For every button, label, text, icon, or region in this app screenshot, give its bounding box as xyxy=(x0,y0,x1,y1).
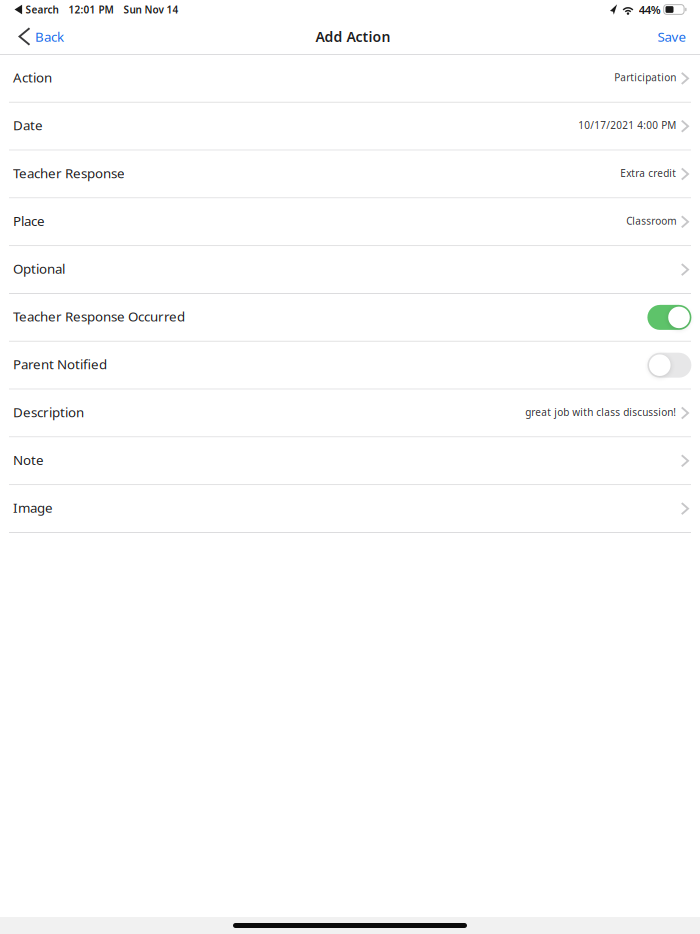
staticText: Optional xyxy=(13,259,65,278)
button[interactable]: Back xyxy=(0,20,74,52)
button[interactable]: Note xyxy=(0,437,700,484)
staticText: Image xyxy=(13,498,53,517)
button[interactable]: Date xyxy=(0,103,700,150)
button[interactable]: Description xyxy=(0,390,700,436)
staticText: Add Action xyxy=(315,27,390,46)
staticText: 44% xyxy=(639,2,661,17)
staticText: Parent Notified xyxy=(13,355,107,373)
button[interactable]: Optional xyxy=(0,246,700,293)
button[interactable]: Action xyxy=(0,55,700,102)
staticText: Note xyxy=(13,451,44,469)
staticText: Back xyxy=(35,27,64,46)
staticText: Extra credit xyxy=(620,166,676,180)
staticText: Description xyxy=(13,403,84,421)
staticText: Teacher Response xyxy=(13,164,125,182)
staticText: Teacher Response Occurred xyxy=(13,307,185,325)
button[interactable]: Teacher Response Occurred xyxy=(0,294,700,341)
staticText: Sun Nov 14 xyxy=(124,3,179,16)
button[interactable]: Parent Notified xyxy=(0,342,700,389)
button[interactable]: Teacher Response xyxy=(0,151,700,197)
staticText: Action xyxy=(13,68,52,86)
staticText: Save xyxy=(657,27,686,46)
staticText: Date xyxy=(13,116,43,134)
button[interactable]: Image xyxy=(0,485,700,532)
button[interactable]: Place xyxy=(0,198,700,245)
staticText: 12:01 PM xyxy=(69,3,114,16)
button[interactable]: Save xyxy=(643,20,700,52)
staticText: great job with class discussion! xyxy=(525,405,676,419)
staticText: 10/17/2021 4:00 PM xyxy=(578,118,676,132)
staticText: Classroom xyxy=(626,214,676,228)
staticText: Participation xyxy=(614,71,676,84)
staticText: Place xyxy=(13,212,45,230)
staticText: Search xyxy=(26,3,59,16)
